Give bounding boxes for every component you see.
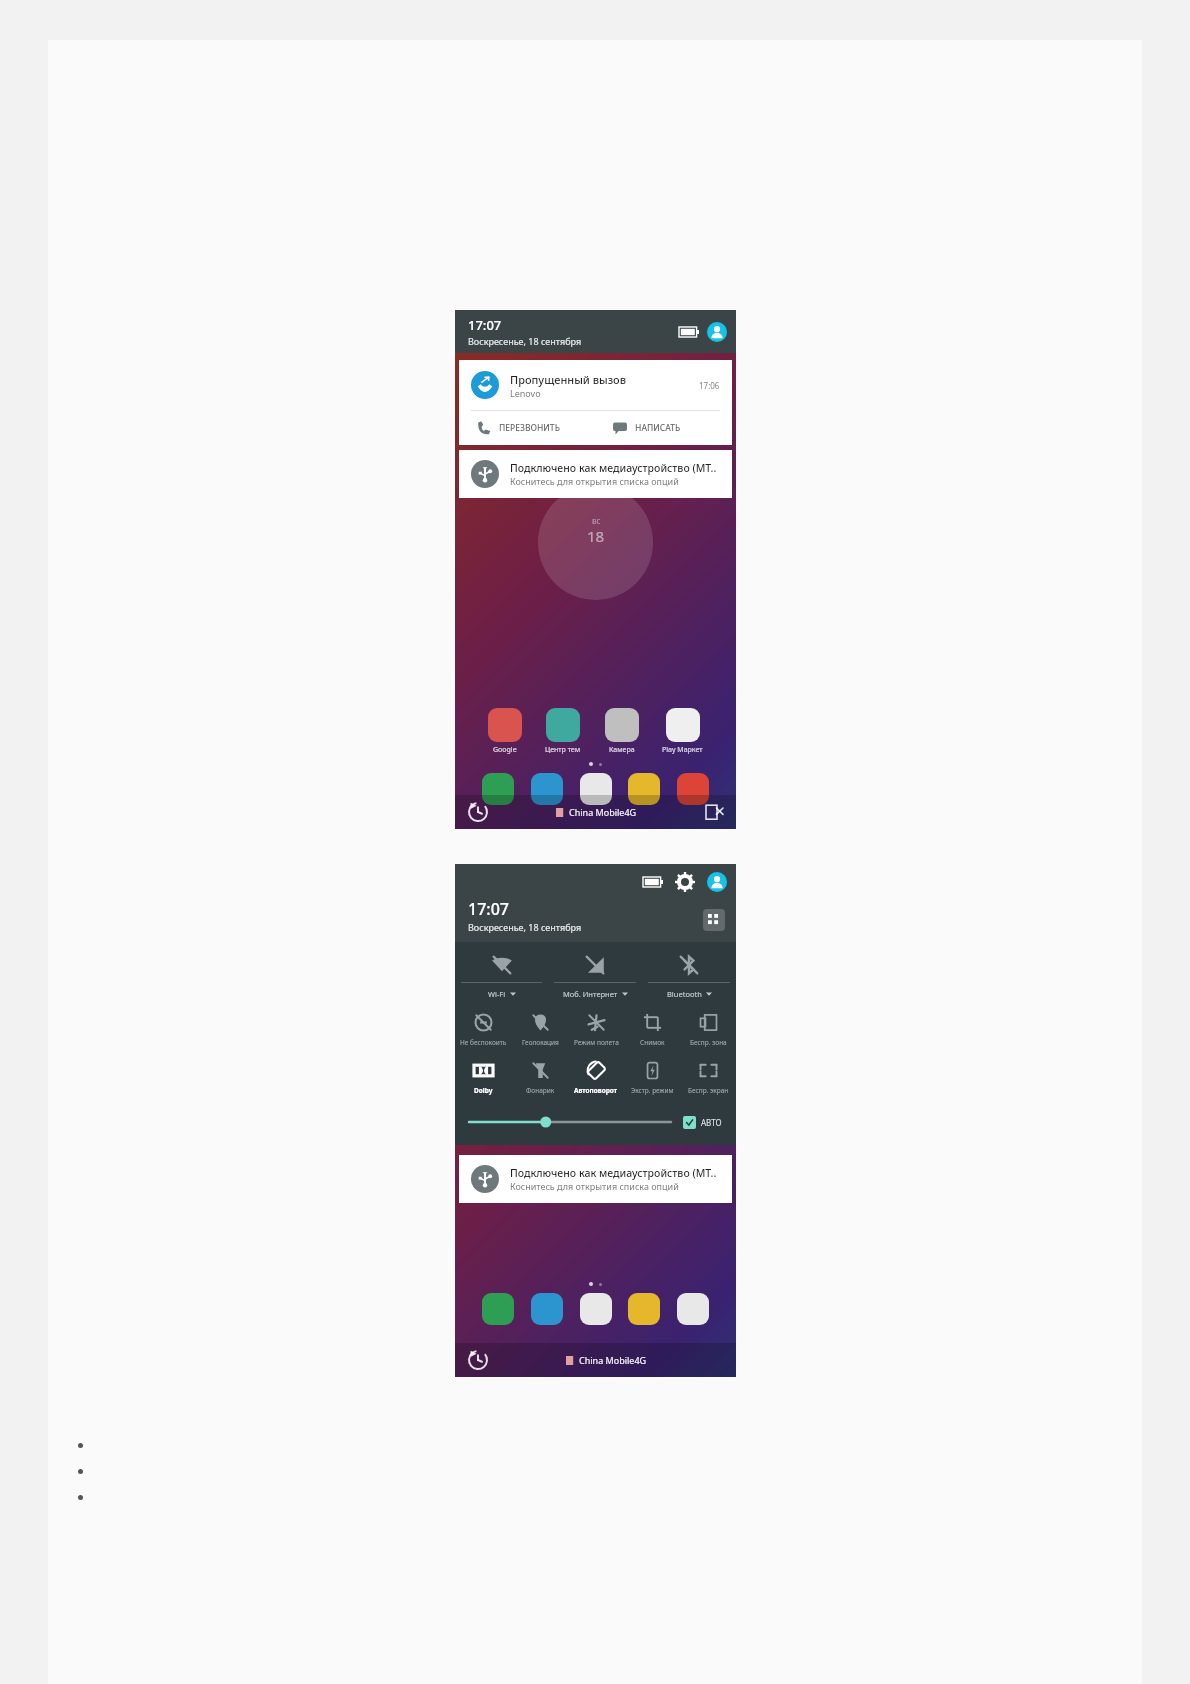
staticText: Беспр. зона bbox=[690, 1038, 727, 1047]
button[interactable]: Подключено как медиаустройство (MT.. bbox=[459, 1155, 732, 1203]
staticText: Воскресенье, 18 сентября bbox=[468, 921, 582, 933]
button[interactable]: ПЕРЕЗВОНИТЬ bbox=[459, 411, 595, 445]
button[interactable]: Режим полета bbox=[568, 1013, 624, 1047]
button[interactable]: Редактировать bbox=[703, 909, 725, 931]
button[interactable]: Моб. Интернет bbox=[548, 954, 642, 999]
staticText: Коснитесь для открытия списка опций bbox=[510, 475, 679, 487]
button[interactable]: Геолокация bbox=[512, 1013, 568, 1047]
button[interactable]: Автоповорот bbox=[568, 1061, 624, 1095]
button[interactable]: Беспр. зона bbox=[680, 1013, 736, 1047]
staticText: Подключено как медиаустройство (MT.. bbox=[510, 461, 717, 475]
staticText: Воскресенье, 18 сентября bbox=[468, 335, 582, 347]
button[interactable]: Не беспокоить bbox=[455, 1013, 512, 1047]
staticText: ПЕРЕЗВОНИТЬ bbox=[499, 422, 560, 434]
staticText: 17:07 bbox=[468, 316, 502, 334]
staticText: 18 bbox=[587, 526, 605, 546]
staticText: Фонарик bbox=[526, 1086, 555, 1095]
staticText: Экстр. режим bbox=[631, 1086, 674, 1095]
button[interactable]: Пользователь bbox=[707, 872, 727, 892]
button[interactable]: Wi-Fi bbox=[455, 954, 548, 999]
button[interactable]: Настройки bbox=[675, 872, 695, 892]
staticText: Dolby bbox=[474, 1086, 493, 1095]
staticText: НАПИСАТЬ bbox=[635, 422, 681, 434]
staticText: 17:07 bbox=[468, 898, 509, 920]
button[interactable]: Экстр. режим bbox=[624, 1061, 680, 1095]
staticText: Автоповорот bbox=[574, 1086, 618, 1095]
staticText: Не беспокоить bbox=[460, 1038, 507, 1047]
button[interactable]: Яркость bbox=[469, 1113, 671, 1131]
staticText: Коснитесь для открытия списка опций bbox=[510, 1180, 679, 1192]
staticText: Bluetooth bbox=[667, 989, 702, 999]
button[interactable]: АВТО bbox=[683, 1116, 722, 1129]
button[interactable]: Подключено как медиаустройство (MT.. bbox=[459, 450, 732, 498]
staticText: Google bbox=[493, 745, 517, 755]
staticText: Моб. Интернет bbox=[563, 989, 618, 999]
button[interactable]: Беспр. экран bbox=[680, 1061, 736, 1095]
staticText: вс bbox=[592, 515, 601, 526]
staticText: АВТО bbox=[701, 1117, 722, 1128]
button[interactable]: Снимок bbox=[624, 1013, 680, 1047]
staticText: Геолокация bbox=[522, 1038, 559, 1047]
staticText: 17:06 bbox=[699, 380, 720, 391]
staticText: Беспр. экран bbox=[688, 1086, 729, 1095]
button[interactable]: Bluetooth bbox=[642, 954, 736, 999]
staticText: Центр тем bbox=[545, 745, 581, 755]
button[interactable]: Пользователь bbox=[707, 322, 727, 342]
button[interactable]: НАПИСАТЬ bbox=[595, 411, 732, 445]
button[interactable]: Пропущенный вызов bbox=[459, 360, 732, 445]
button[interactable]: Dolby bbox=[455, 1061, 512, 1095]
staticText: Подключено как медиаустройство (MT.. bbox=[510, 1166, 717, 1180]
staticText: Wi-Fi bbox=[488, 989, 506, 999]
staticText: Play Маркет bbox=[662, 745, 703, 755]
staticText: Снимок bbox=[640, 1038, 665, 1047]
staticText: China Mobile4G bbox=[569, 806, 637, 818]
staticText: Камера bbox=[609, 745, 635, 755]
staticText: Режим полета bbox=[574, 1038, 619, 1047]
staticText: Lenovo bbox=[510, 387, 541, 399]
staticText: China Mobile4G bbox=[579, 1354, 647, 1366]
staticText: Пропущенный вызов bbox=[510, 372, 627, 387]
button[interactable]: Фонарик bbox=[512, 1061, 568, 1095]
